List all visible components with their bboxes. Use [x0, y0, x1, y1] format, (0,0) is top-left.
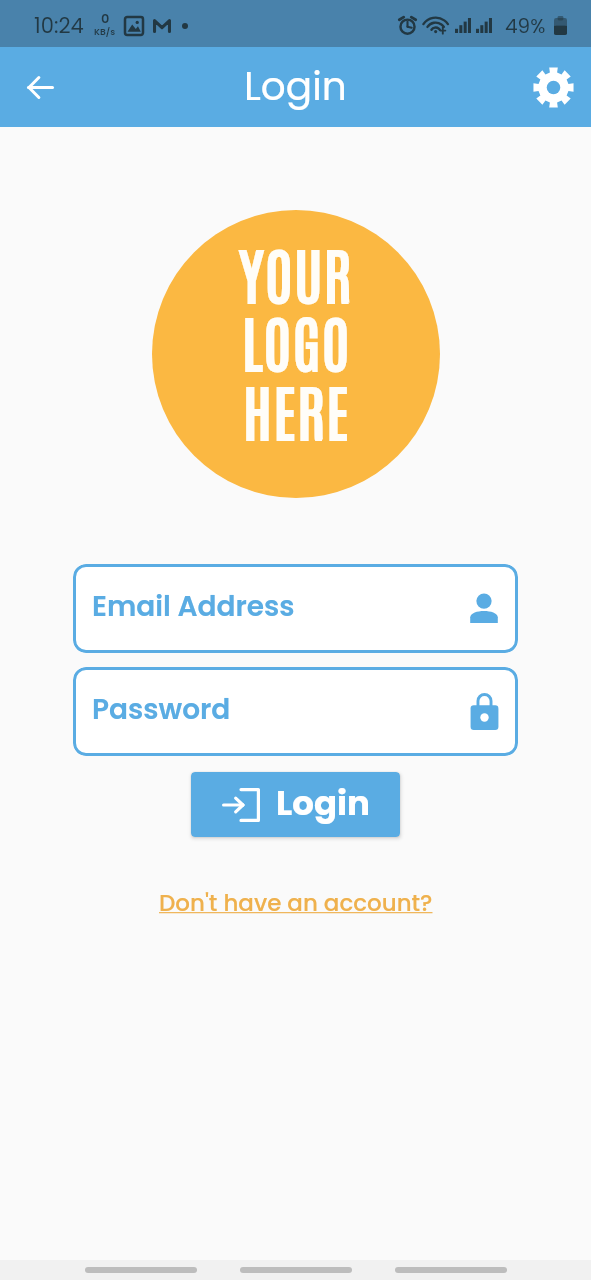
staticText: Don't have an account?	[159, 887, 433, 919]
staticText: LOGO	[242, 302, 351, 380]
button[interactable]: Login	[191, 772, 400, 837]
staticText: Password	[92, 690, 231, 729]
staticText: YOUR	[239, 234, 353, 312]
button[interactable]: Password	[73, 667, 518, 756]
staticText: HERE	[243, 371, 350, 449]
staticText: 10:24	[34, 11, 84, 40]
button[interactable]: Recents	[395, 1267, 507, 1273]
staticText: Email Address	[92, 587, 295, 626]
staticText: 0	[101, 9, 110, 27]
button[interactable]: Home	[240, 1267, 352, 1273]
staticText: Login	[276, 779, 370, 827]
button[interactable]: Settings	[525, 59, 581, 115]
staticText: Login	[244, 59, 347, 114]
button[interactable]: Don't have an account?	[151, 883, 441, 923]
staticText: 49%	[505, 12, 546, 40]
button[interactable]: Back	[85, 1267, 197, 1273]
staticText: KB/s	[94, 26, 116, 39]
button[interactable]: Email Address	[73, 564, 518, 653]
button[interactable]: Back	[12, 59, 68, 115]
